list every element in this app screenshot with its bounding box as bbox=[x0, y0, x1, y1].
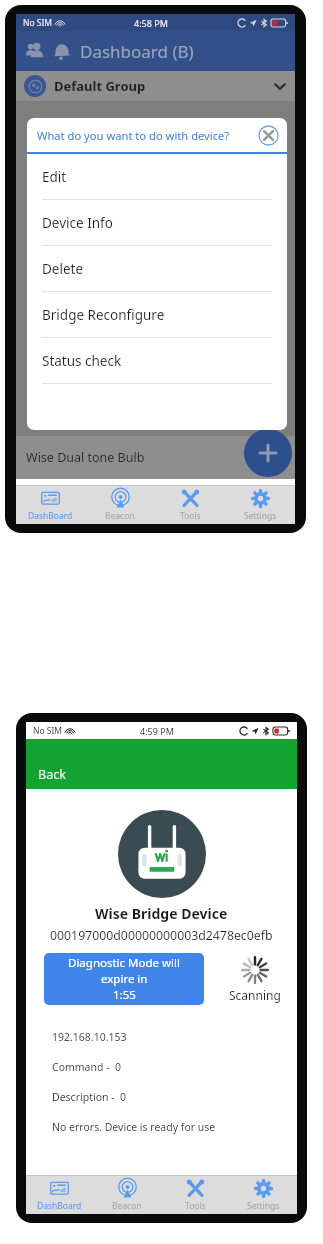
button[interactable]: Status check bbox=[27, 338, 287, 383]
button[interactable]: Diagnostic Mode will bbox=[44, 953, 204, 1005]
button[interactable]: Add device bbox=[244, 429, 292, 477]
staticText: Wise Dual tone Bulb bbox=[26, 449, 145, 466]
staticText: 192.168.10.153 bbox=[52, 1030, 127, 1044]
staticText: 1:55 bbox=[113, 987, 136, 1003]
staticText: Description - 0 bbox=[52, 1090, 127, 1104]
staticText: Settings bbox=[244, 510, 277, 522]
staticText: No SIM bbox=[33, 725, 63, 737]
staticText: expire in bbox=[101, 971, 148, 987]
button[interactable]: Bridge Reconfigure bbox=[27, 292, 287, 337]
button[interactable]: Tools bbox=[161, 1176, 229, 1214]
button[interactable]: Close bbox=[258, 125, 279, 146]
button[interactable]: Edit bbox=[27, 154, 287, 199]
staticText: Settings bbox=[247, 1200, 280, 1212]
staticText: Diagnostic Mode will bbox=[68, 955, 180, 971]
button[interactable]: Notifications bbox=[48, 38, 74, 64]
staticText: Wise Bridge Device bbox=[95, 904, 228, 923]
staticText: DashBoard bbox=[28, 510, 73, 522]
button[interactable]: Delete bbox=[27, 246, 287, 291]
staticText: Status check bbox=[42, 352, 122, 370]
staticText: Tools bbox=[185, 1200, 206, 1212]
staticText: Delete bbox=[42, 260, 84, 278]
button[interactable]: Settings bbox=[225, 486, 295, 524]
staticText: Tools bbox=[180, 510, 201, 522]
staticText: Default Group bbox=[54, 77, 146, 95]
button[interactable]: DashBoard bbox=[26, 1176, 93, 1214]
staticText: Back bbox=[38, 766, 66, 783]
button[interactable]: Tools bbox=[155, 486, 225, 524]
staticText: No errors. Device is ready for use bbox=[52, 1120, 216, 1134]
staticText: Scanning bbox=[229, 987, 281, 1003]
button[interactable]: Settings bbox=[229, 1176, 297, 1214]
button[interactable]: Beacon bbox=[85, 486, 155, 524]
staticText: Bridge Reconfigure bbox=[42, 306, 165, 324]
staticText: What do you want to do with device? bbox=[37, 128, 230, 143]
staticText: Device Info bbox=[42, 214, 113, 232]
button[interactable]: DashBoard bbox=[16, 486, 85, 524]
staticText: DashBoard bbox=[37, 1200, 82, 1212]
button[interactable]: Users bbox=[22, 38, 48, 64]
staticText: Beacon bbox=[105, 510, 135, 522]
staticText: Edit bbox=[42, 168, 67, 186]
button[interactable]: Beacon bbox=[93, 1176, 161, 1214]
staticText: 4:58 PM bbox=[134, 17, 168, 29]
staticText: 4:59 PM bbox=[140, 725, 174, 737]
staticText: Beacon bbox=[112, 1200, 142, 1212]
staticText: 000197000d00000000003d2478ec0efb bbox=[50, 927, 273, 944]
staticText: No SIM bbox=[23, 17, 53, 29]
button[interactable]: Back bbox=[34, 763, 70, 785]
staticText: Command - 0 bbox=[52, 1060, 122, 1074]
button[interactable]: Device Info bbox=[27, 200, 287, 245]
staticText: Dashboard (B) bbox=[80, 40, 194, 63]
